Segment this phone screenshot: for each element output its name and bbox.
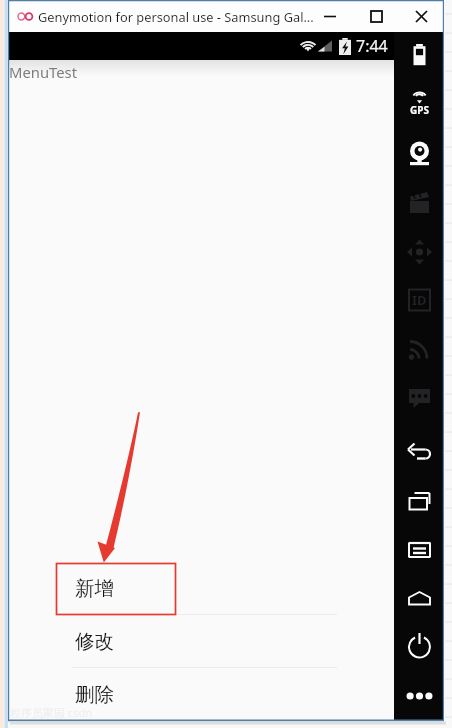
staticText: 程序员家园 csdn bbox=[10, 705, 92, 720]
staticText: GPS bbox=[410, 103, 429, 117]
button[interactable]: 修改 bbox=[8, 615, 394, 668]
button[interactable]: More options bbox=[394, 684, 444, 726]
button[interactable]: 删除 bbox=[8, 668, 394, 721]
button[interactable]: Camera bbox=[394, 130, 444, 172]
staticText: 7:44 bbox=[356, 35, 388, 57]
staticText: 删除 bbox=[75, 682, 115, 707]
staticText: MenuTest bbox=[9, 62, 78, 82]
button[interactable]: Close bbox=[402, 1, 440, 32]
button[interactable]: Identifiers bbox=[394, 279, 444, 321]
button[interactable]: Recents bbox=[394, 484, 444, 526]
button[interactable]: 新增 bbox=[8, 562, 394, 615]
button[interactable]: Maximize bbox=[354, 1, 398, 32]
button[interactable]: SMS bbox=[394, 376, 444, 418]
button[interactable]: Power bbox=[394, 636, 444, 678]
staticText: 修改 bbox=[75, 629, 115, 654]
button[interactable]: Screen recording bbox=[394, 181, 444, 223]
staticText: Genymotion for personal use - Samsung Ga… bbox=[38, 8, 314, 25]
staticText: 新增 bbox=[75, 576, 115, 601]
button[interactable]: GPS bbox=[394, 80, 444, 122]
button[interactable]: Menu bbox=[394, 534, 444, 576]
button[interactable]: Minimize bbox=[308, 1, 352, 32]
staticText: ID bbox=[412, 291, 427, 309]
button[interactable]: Network bbox=[394, 328, 444, 370]
button[interactable]: Battery bbox=[394, 32, 444, 74]
button[interactable]: Dpad bbox=[394, 231, 444, 273]
button[interactable]: Home bbox=[394, 583, 444, 625]
button[interactable]: Back bbox=[394, 433, 444, 475]
